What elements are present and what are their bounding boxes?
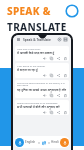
button[interactable]: Speak: [42, 110, 46, 114]
staticText: मैं बाज़ार जा रहा हूँ: [17, 68, 38, 72]
button[interactable]: Choose target language: [47, 141, 50, 144]
button[interactable]: I am going to the market: [15, 63, 69, 78]
button[interactable]: Delete: [63, 56, 67, 60]
button[interactable]: Menu: [16, 37, 21, 42]
button[interactable]: Share: [56, 73, 60, 77]
button[interactable]: Speak and translate in all languages: [15, 100, 69, 115]
button[interactable]: Choose source language: [37, 141, 40, 144]
staticText: मैं आपकी कैसे मदद कर सकता हूँ: [17, 51, 55, 55]
button[interactable]: Delete: [63, 93, 67, 97]
button[interactable]: Copy: [49, 110, 53, 114]
button[interactable]: Share: [56, 56, 60, 60]
staticText: TRANSLATE: [7, 20, 67, 34]
button[interactable]: Copy: [49, 93, 53, 97]
staticText: This is the best translator in the world…: [17, 81, 67, 87]
staticText: सभी भाषाओं में बोलें और अनुवाद करें: [17, 105, 60, 109]
button[interactable]: Copy: [49, 56, 53, 60]
button[interactable]: Settings: [57, 37, 62, 42]
button[interactable]: History: [63, 37, 68, 42]
button[interactable]: Share: [56, 93, 60, 97]
button[interactable]: Delete: [63, 110, 67, 114]
button[interactable]: Delete: [63, 73, 67, 77]
button[interactable]: How may I help you?: [15, 46, 69, 61]
staticText: Speak and translate in all languages: [17, 101, 58, 104]
button[interactable]: Speak English: [15, 138, 24, 147]
staticText: Speak & Translate: [23, 38, 51, 42]
button[interactable]: Swap languages: [40, 139, 47, 146]
button[interactable]: This is the best translator in the world…: [15, 80, 69, 98]
staticText: Hindi: [51, 140, 59, 144]
button[interactable]: Speak: [42, 93, 46, 97]
staticText: SPEAK &: [7, 4, 51, 18]
button[interactable]: Speak: [42, 73, 46, 77]
button[interactable]: Share: [56, 110, 60, 114]
button[interactable]: Speak: [42, 56, 46, 60]
button[interactable]: Speak Hindi: [60, 138, 69, 147]
staticText: I am going to the market: [17, 64, 46, 67]
staticText: How may I help you?: [17, 47, 41, 50]
staticText: यह दुनिया का सबसे अच्छा अनुवादक है और बह…: [17, 88, 67, 92]
staticText: English: [25, 140, 36, 144]
button[interactable]: Copy: [49, 73, 53, 77]
